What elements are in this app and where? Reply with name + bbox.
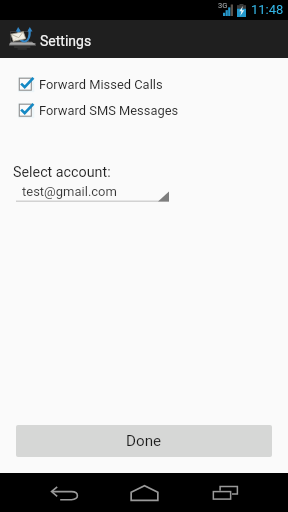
button[interactable]: Recent apps	[193, 473, 257, 512]
button[interactable]: test@gmail.com	[16, 184, 169, 202]
button[interactable]: Back	[32, 473, 96, 512]
staticText: Forward Missed Calls	[39, 77, 163, 92]
button[interactable]: Home	[112, 473, 176, 512]
staticText: Settings	[40, 33, 92, 49]
staticText: 11:48	[251, 2, 284, 17]
staticText: 3G	[218, 1, 228, 10]
staticText: Done	[126, 432, 162, 450]
staticText: Select account:	[13, 164, 111, 181]
staticText: Forward SMS Messages	[39, 103, 179, 118]
staticText: test@gmail.com	[22, 184, 117, 199]
button[interactable]: Forward Missed Calls	[19, 77, 288, 92]
button[interactable]: Done	[16, 425, 272, 457]
button[interactable]: Forward SMS Messages	[19, 103, 288, 118]
